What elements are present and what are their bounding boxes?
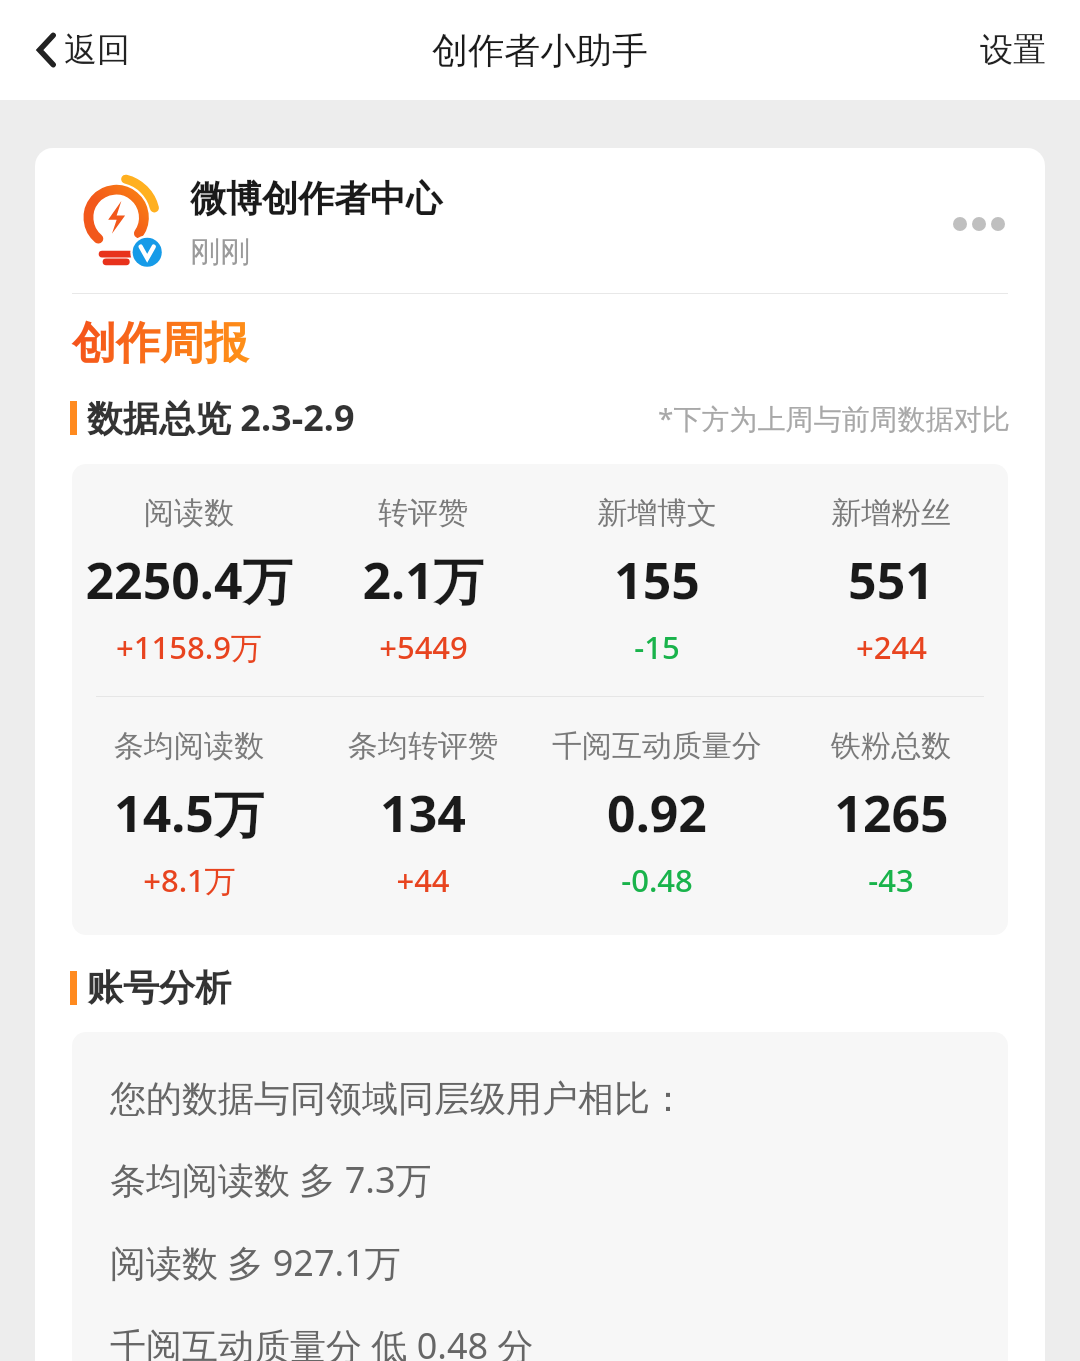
staticText: 刚刚 bbox=[190, 233, 250, 271]
staticText: 条均转评赞 bbox=[348, 727, 498, 765]
staticText: 新增粉丝 bbox=[831, 494, 951, 532]
staticText: 2250.4万 bbox=[85, 546, 293, 614]
staticText: -15 bbox=[634, 626, 680, 668]
staticText: 阅读数 bbox=[144, 494, 234, 532]
button[interactable]: 设置 bbox=[972, 21, 1054, 79]
staticText: 千阅互动质量分 低 0.48 分 bbox=[110, 1321, 534, 1361]
staticText: +44 bbox=[396, 859, 450, 901]
staticText: 创作周报 bbox=[72, 316, 248, 371]
staticText: +1158.9万 bbox=[116, 626, 262, 668]
button[interactable]: 转评赞 bbox=[306, 494, 540, 668]
button[interactable]: 返回 bbox=[30, 23, 136, 77]
staticText: 数据总览 2.3-2.9 bbox=[87, 393, 355, 442]
button[interactable]: 新增粉丝 bbox=[774, 494, 1008, 668]
button[interactable]: 千阅互动质量分 bbox=[540, 727, 774, 901]
staticText: 1265 bbox=[834, 779, 949, 847]
staticText: -0.48 bbox=[621, 859, 693, 901]
staticText: 2.1万 bbox=[362, 546, 484, 614]
staticText: 条均阅读数 多 7.3万 bbox=[110, 1155, 432, 1204]
staticText: 条均阅读数 bbox=[114, 727, 264, 765]
staticText: 微博创作者中心 bbox=[190, 176, 442, 221]
staticText: +244 bbox=[856, 626, 927, 668]
staticText: 转评赞 bbox=[378, 494, 468, 532]
staticText: 551 bbox=[848, 546, 934, 614]
staticText: 阅读数 多 927.1万 bbox=[110, 1238, 401, 1287]
staticText: 134 bbox=[380, 779, 466, 847]
staticText: 账号分析 bbox=[87, 965, 231, 1010]
staticText: +8.1万 bbox=[143, 859, 236, 901]
button[interactable]: 铁粉总数 bbox=[774, 727, 1008, 901]
button[interactable]: 阅读数 bbox=[72, 494, 306, 668]
staticText: 千阅互动质量分 bbox=[552, 727, 762, 765]
staticText: 14.5万 bbox=[114, 779, 264, 847]
staticText: *下方为上周与前周数据对比 bbox=[658, 399, 1010, 437]
staticText: 新增博文 bbox=[597, 494, 717, 532]
button[interactable]: 新增博文 bbox=[540, 494, 774, 668]
staticText: 您的数据与同领域同层级用户相比： bbox=[110, 1076, 686, 1121]
staticText: +5449 bbox=[379, 626, 468, 668]
button[interactable]: 条均阅读数 bbox=[72, 727, 306, 901]
button[interactable]: 微博创作者中心 bbox=[35, 148, 1045, 293]
staticText: 返回 bbox=[64, 29, 130, 71]
button[interactable]: 条均转评赞 bbox=[306, 727, 540, 901]
staticText: 155 bbox=[614, 546, 700, 614]
button[interactable]: More options bbox=[941, 205, 1017, 243]
staticText: 设置 bbox=[980, 29, 1046, 71]
staticText: 铁粉总数 bbox=[831, 727, 951, 765]
staticText: 0.92 bbox=[607, 779, 707, 847]
staticText: 创作者小助手 bbox=[432, 28, 648, 73]
staticText: -43 bbox=[868, 859, 914, 901]
